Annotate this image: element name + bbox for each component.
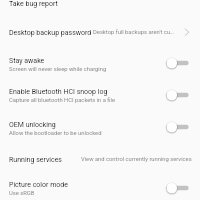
staticText: Capture all bluetooth HCI packets in a f… — [9, 97, 116, 104]
staticText: Take bug report — [9, 0, 58, 8]
button[interactable]: Enable Bluetooth HCI snoop log — [0, 78, 200, 110]
staticText: View and control currently running servi… — [81, 156, 192, 163]
button[interactable]: Desktop backup password details — [180, 25, 194, 39]
button[interactable]: Picture color mode — [0, 172, 200, 200]
staticText: Picture color mode — [9, 181, 68, 189]
staticText: Running services — [9, 156, 62, 164]
button[interactable]: OEM unlocking toggle — [163, 118, 193, 136]
button[interactable]: Stay awake — [0, 46, 200, 78]
staticText: Screen will never sleep while charging — [9, 66, 107, 73]
button[interactable]: Desktop backup password — [0, 16, 200, 46]
staticText: Enable Bluetooth HCI snoop log — [9, 88, 108, 96]
button[interactable]: Running services — [0, 144, 200, 172]
staticText: OEM unlocking — [9, 121, 56, 129]
staticText: Desktop full backups aren't cu… — [93, 29, 174, 36]
staticText: Allow the bootloader to be unlocked — [9, 130, 102, 137]
staticText: Stay awake — [9, 57, 45, 65]
staticText: Desktop backup password — [9, 29, 92, 37]
button[interactable]: Enable Bluetooth HCI snoop log toggle — [163, 86, 193, 104]
button[interactable]: OEM unlocking — [0, 110, 200, 144]
button[interactable]: Stay awake toggle — [163, 54, 193, 72]
button[interactable]: Take bug report — [0, 0, 200, 16]
staticText: Use sRGB — [9, 190, 35, 197]
button[interactable]: Picture color mode toggle — [163, 179, 193, 197]
